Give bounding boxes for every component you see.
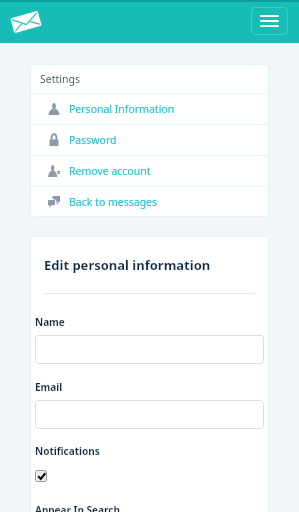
- staticText: Back to messages: [69, 195, 158, 209]
- button[interactable]: [35, 400, 264, 429]
- button[interactable]: Password: [30, 125, 269, 155]
- staticText: Name: [35, 315, 65, 329]
- staticText: Remove account: [69, 164, 151, 178]
- button[interactable]: [35, 335, 264, 364]
- button[interactable]: Menu: [251, 7, 288, 35]
- button[interactable]: Back to messages: [30, 187, 269, 217]
- button[interactable]: Home: [6, 2, 46, 42]
- staticText: Notifications: [35, 444, 100, 458]
- button[interactable]: Remove account: [30, 156, 269, 186]
- staticText: Appear In Search: [35, 503, 120, 512]
- staticText: Email: [35, 380, 63, 394]
- button[interactable]: Personal Information: [30, 94, 269, 124]
- staticText: Personal Information: [69, 102, 175, 116]
- button[interactable]: Notifications: [35, 470, 47, 482]
- staticText: Edit personal information: [44, 256, 211, 274]
- staticText: Settings: [40, 72, 80, 86]
- staticText: Password: [69, 133, 117, 147]
